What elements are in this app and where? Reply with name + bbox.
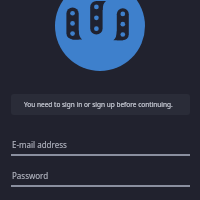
staticText: You need to sign in or sign up before co… xyxy=(24,100,173,109)
button[interactable]: Password xyxy=(12,170,189,190)
button[interactable]: You need to sign in or sign up before co… xyxy=(11,94,190,115)
staticText: Password xyxy=(12,170,49,181)
staticText: E-mail address xyxy=(12,139,67,150)
button[interactable]: E-mail address xyxy=(12,139,189,159)
